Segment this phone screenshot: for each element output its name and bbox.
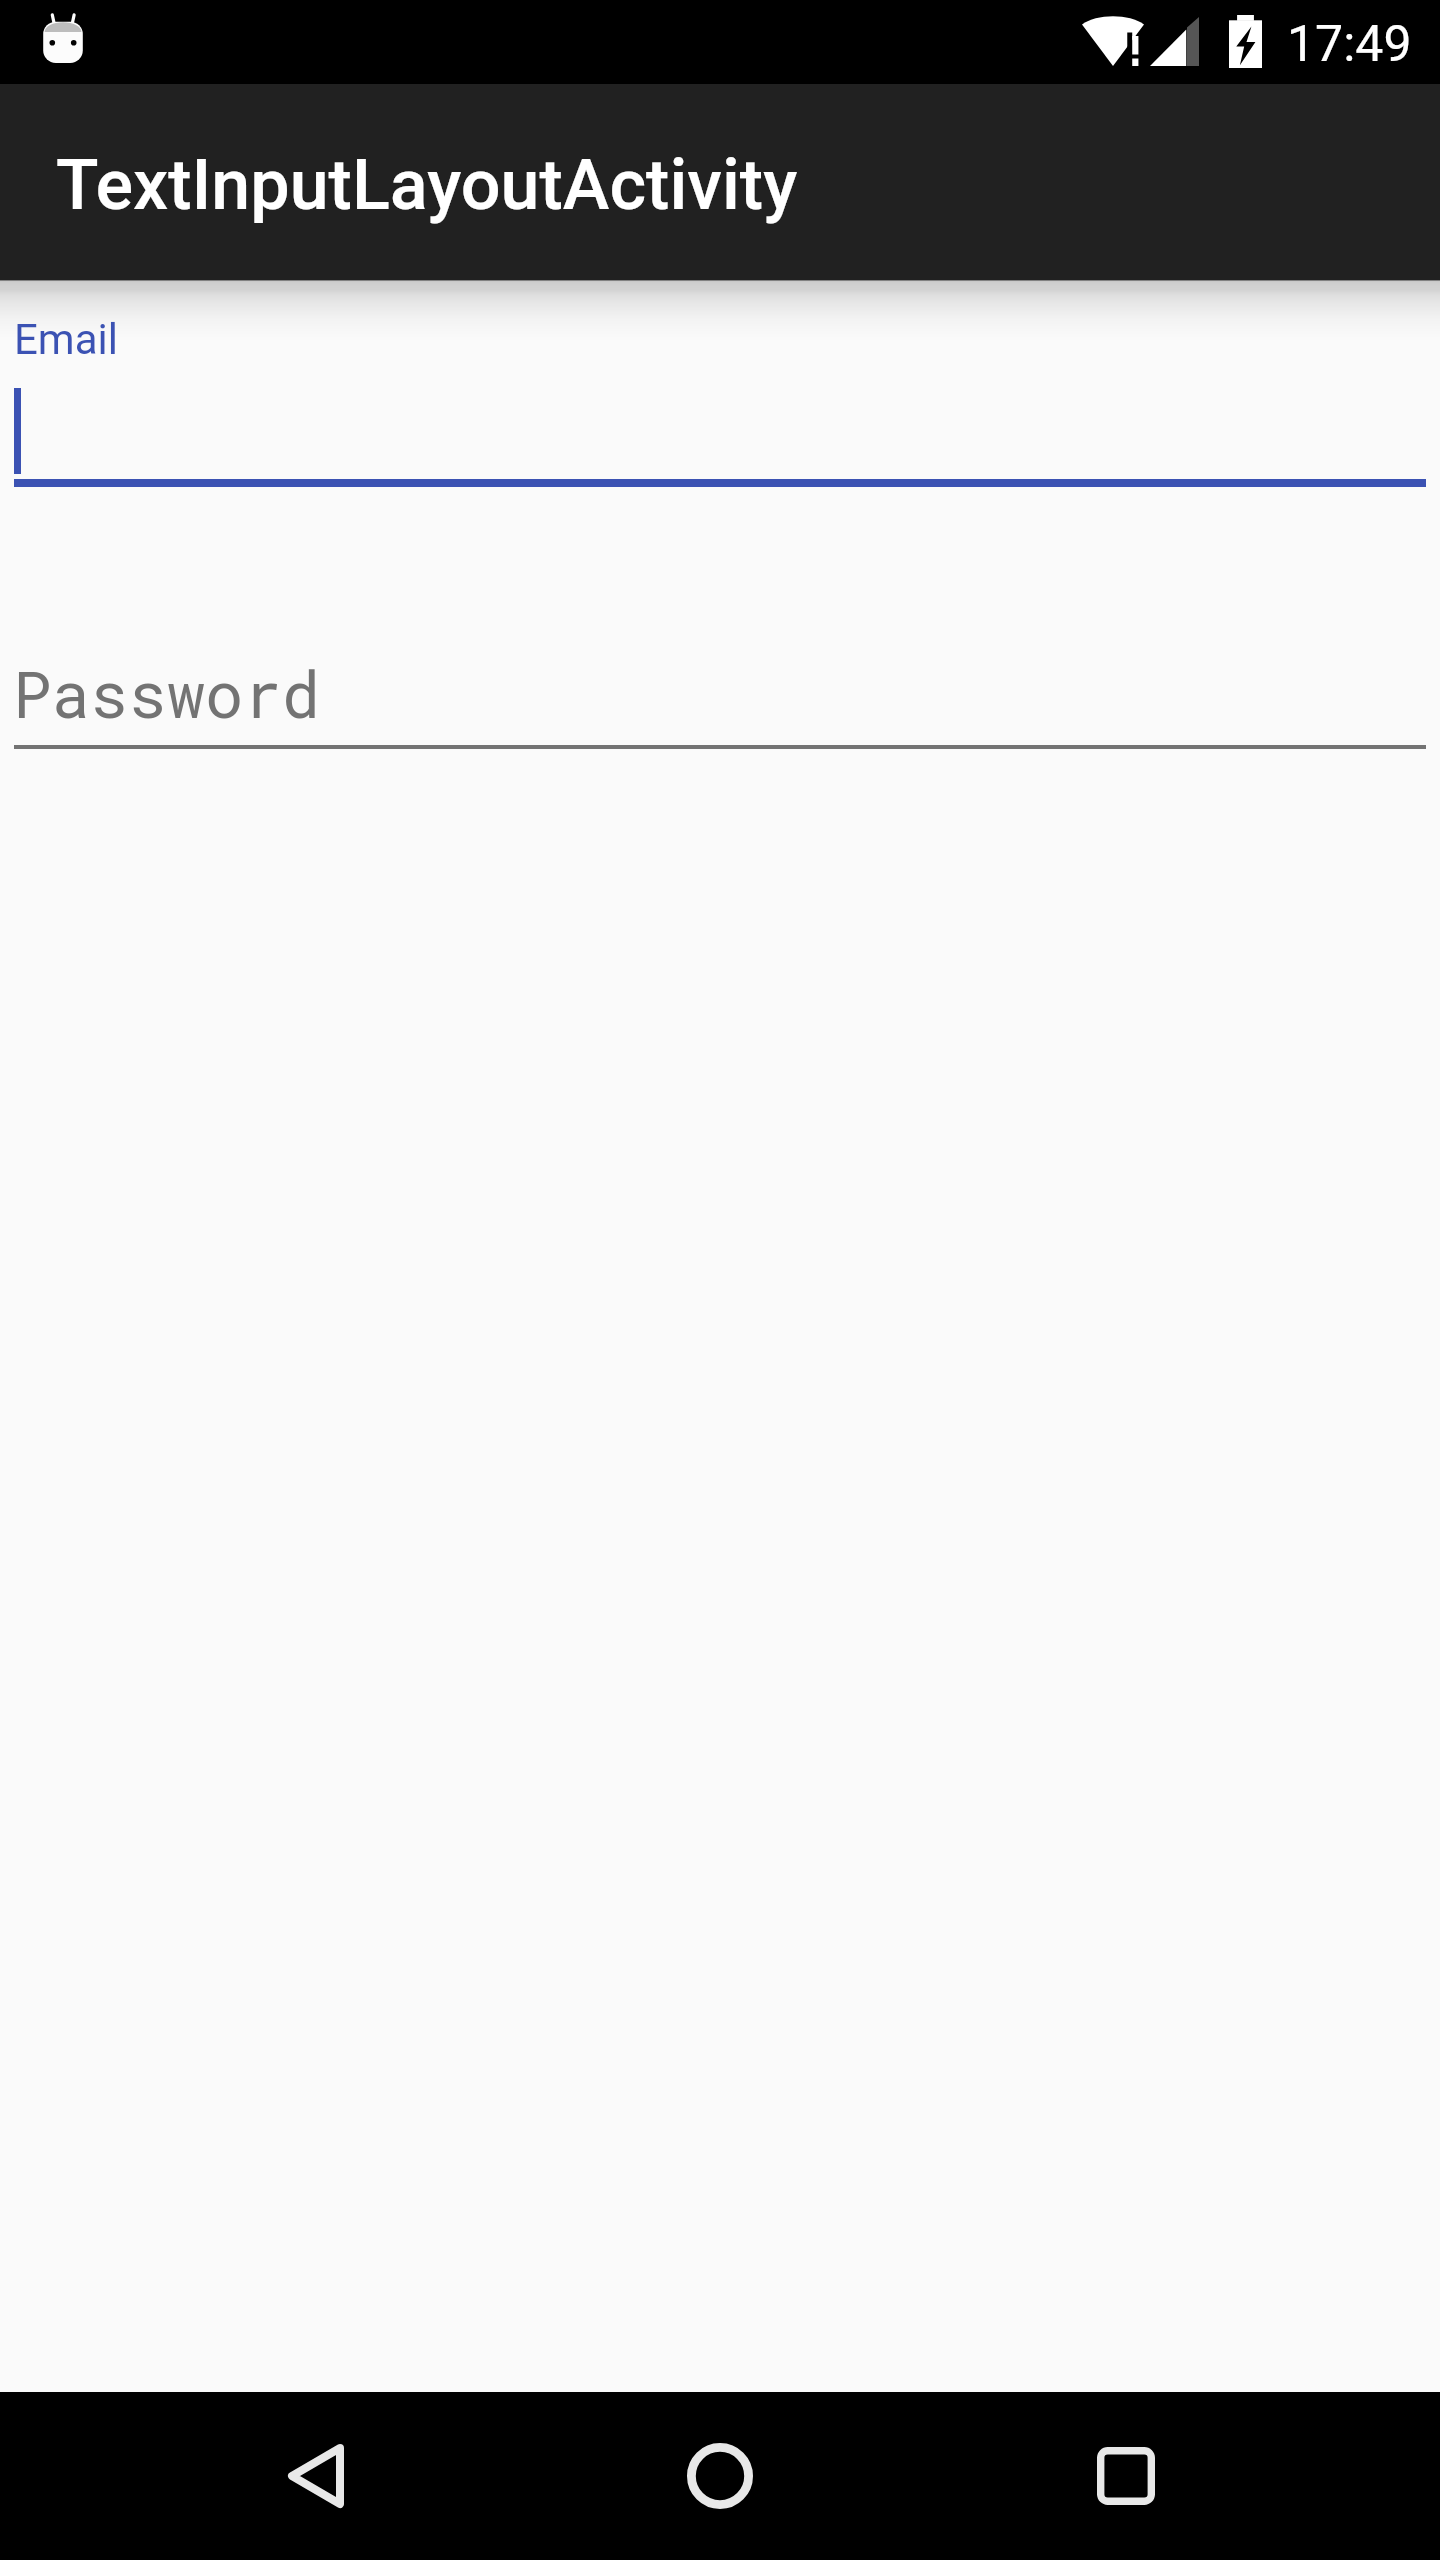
button[interactable]: Recent apps	[1006, 2392, 1246, 2560]
staticText: 17:49	[1287, 15, 1412, 74]
button[interactable]: Password	[0, 620, 1440, 770]
other: Wi-Fi, no internet	[1082, 16, 1144, 66]
other: Mobile signal	[1150, 17, 1199, 66]
staticText: TextInputLayoutActivity	[56, 144, 798, 226]
button[interactable]: Home	[600, 2392, 840, 2560]
button[interactable]: Email	[0, 290, 1440, 500]
button[interactable]: Back	[196, 2392, 436, 2560]
other: Android system notification	[42, 13, 84, 63]
staticText: Password	[13, 651, 321, 735]
staticText: Email	[14, 315, 118, 364]
other: Battery charging	[1229, 15, 1262, 68]
